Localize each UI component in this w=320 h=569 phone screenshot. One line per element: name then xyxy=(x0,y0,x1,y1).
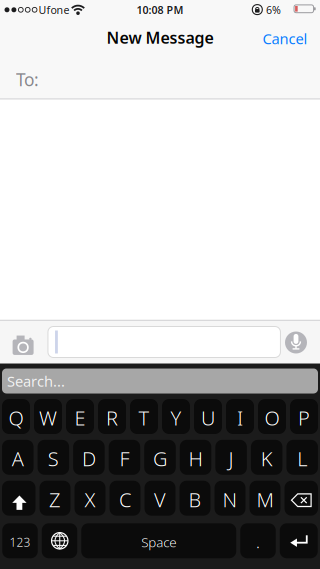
button[interactable]: B xyxy=(179,481,210,516)
button[interactable]: A xyxy=(2,440,34,475)
staticText: W xyxy=(39,404,57,431)
button[interactable]: 123 xyxy=(2,523,38,558)
staticText: Space xyxy=(141,533,176,551)
button[interactable]: G xyxy=(144,440,176,475)
staticText: F xyxy=(119,445,129,472)
staticText: E xyxy=(74,404,85,431)
staticText: O xyxy=(264,404,279,431)
staticText: T xyxy=(138,404,149,431)
staticText: 123 xyxy=(9,534,30,550)
staticText: 6% xyxy=(266,3,281,17)
staticText: Ufone xyxy=(38,3,69,17)
staticText: P xyxy=(298,404,310,431)
button[interactable]: J xyxy=(215,440,247,475)
button[interactable]: C xyxy=(109,481,140,516)
button[interactable]: Space xyxy=(81,523,236,558)
button[interactable]: U xyxy=(194,399,222,434)
button[interactable]: Delete xyxy=(284,481,318,516)
button[interactable]: Message field xyxy=(48,326,280,357)
button[interactable]: P xyxy=(290,399,318,434)
button[interactable]: H xyxy=(180,440,211,475)
button[interactable]: . xyxy=(240,523,276,558)
staticText: A xyxy=(12,445,24,472)
button[interactable]: T xyxy=(130,399,158,434)
button[interactable]: L xyxy=(286,440,318,475)
button[interactable]: Y xyxy=(162,399,190,434)
button[interactable]: E xyxy=(66,399,94,434)
button[interactable]: Shift xyxy=(2,481,35,516)
staticText: N xyxy=(222,486,237,513)
staticText: S xyxy=(48,445,59,472)
button[interactable]: Q xyxy=(2,399,30,434)
staticText: To: xyxy=(16,68,39,91)
staticText: G xyxy=(153,445,167,472)
staticText: L xyxy=(297,445,307,472)
button[interactable]: X xyxy=(74,481,105,516)
button[interactable]: V xyxy=(144,481,175,516)
button[interactable]: D xyxy=(73,440,105,475)
button[interactable]: R xyxy=(98,399,126,434)
button[interactable]: S xyxy=(38,440,69,475)
button[interactable]: Camera xyxy=(13,335,34,355)
button[interactable]: Search xyxy=(2,368,318,393)
button[interactable]: To recipient xyxy=(0,63,320,96)
staticText: 10:08 PM xyxy=(136,3,183,17)
button[interactable]: Z xyxy=(39,481,70,516)
staticText: Q xyxy=(8,404,23,431)
button[interactable]: Return xyxy=(280,523,318,558)
staticText: R xyxy=(106,404,118,431)
staticText: H xyxy=(188,445,202,472)
staticText: Cancel xyxy=(262,29,307,48)
staticText: C xyxy=(119,486,131,513)
staticText: Search... xyxy=(7,371,65,391)
staticText: D xyxy=(82,445,96,472)
staticText: B xyxy=(188,486,201,513)
button[interactable]: M xyxy=(249,481,280,516)
staticText: J xyxy=(229,445,234,472)
button[interactable]: Record audio xyxy=(285,331,307,353)
staticText: K xyxy=(261,445,273,472)
staticText: I xyxy=(237,404,243,431)
button[interactable]: Cancel xyxy=(257,23,313,53)
button[interactable]: N xyxy=(214,481,245,516)
staticText: Y xyxy=(170,404,181,431)
staticText: X xyxy=(84,486,95,513)
staticText: M xyxy=(256,486,273,513)
button[interactable]: Next keyboard xyxy=(42,523,77,558)
button[interactable]: F xyxy=(109,440,140,475)
button[interactable]: I xyxy=(226,399,254,434)
staticText: New Message xyxy=(106,27,213,48)
button[interactable]: O xyxy=(258,399,286,434)
staticText: V xyxy=(154,486,166,513)
staticText: U xyxy=(201,404,215,431)
button[interactable]: W xyxy=(34,399,62,434)
button[interactable]: K xyxy=(251,440,282,475)
staticText: . xyxy=(256,531,260,553)
staticText: Z xyxy=(49,486,61,513)
